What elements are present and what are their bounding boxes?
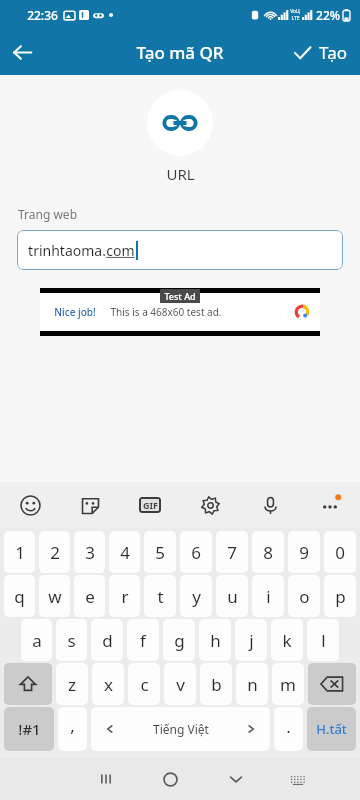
staticText: Nice job! [54,305,96,319]
staticText: o [299,585,310,608]
staticText: LTE [291,15,300,22]
staticText: Tạo mã QR [136,41,224,64]
button[interactable]: a [21,619,52,661]
button[interactable]: Tạo [293,30,347,75]
staticText: y [192,585,201,608]
button[interactable]: Keyboard layout [268,758,327,800]
button[interactable]: trinhtaoma. [17,230,343,270]
button[interactable]: p [324,575,356,617]
button[interactable]: 0 [324,531,356,573]
staticText: 8 [263,541,273,564]
button[interactable]: 7 [216,531,248,573]
staticText: f [140,629,146,652]
button[interactable]: t [144,575,176,617]
button[interactable]: 2 [39,531,70,573]
button[interactable]: s [56,619,87,661]
button[interactable]: d [91,619,123,661]
staticText: 6 [191,541,201,564]
staticText: q [14,585,25,608]
button[interactable]: Nice job! [40,288,320,336]
button[interactable]: H.tất [307,707,356,751]
button[interactable]: z [56,663,88,705]
button[interactable]: Voice input [240,482,300,528]
button[interactable]: g [163,619,195,661]
staticText: 3 [85,541,95,564]
staticText: 1 [15,541,25,564]
button[interactable]: 6 [180,531,212,573]
staticText: v [176,673,185,696]
button[interactable]: 4 [109,531,140,573]
button[interactable]: f [127,619,159,661]
button[interactable]: v [164,663,196,705]
staticText: H.tất [316,720,347,738]
button[interactable]: Home [138,758,203,800]
staticText: i [266,585,271,608]
button[interactable]: URL type [147,90,213,156]
button[interactable]: Back [0,30,45,75]
button[interactable]: 5 [144,531,176,573]
staticText: s [67,629,76,652]
staticText: n [247,673,258,696]
button[interactable]: 1 [4,531,35,573]
button[interactable]: GIF [120,482,180,528]
staticText: e [85,585,95,608]
button[interactable]: m [272,663,304,705]
staticText: Tiếng Việt [153,721,209,737]
staticText: g [174,629,185,652]
button[interactable]: 3 [74,531,105,573]
button[interactable]: Backspace [308,663,356,705]
staticText: Tạo [319,41,347,64]
staticText: 22:36 [27,7,58,23]
button[interactable]: x [92,663,124,705]
button[interactable]: Shift [4,663,52,705]
button[interactable]: w [39,575,70,617]
staticText: b [211,673,222,696]
staticText: t [157,585,164,608]
button[interactable]: . [274,707,303,751]
staticText: a [32,629,42,652]
staticText: z [68,673,76,696]
button[interactable]: b [200,663,232,705]
staticText: m [280,673,296,696]
staticText: VoЦ [290,8,300,15]
staticText: 7 [227,541,237,564]
staticText: 22% [316,7,340,23]
button[interactable]: i [252,575,284,617]
button[interactable]: h [199,619,231,661]
staticText: URL [166,164,195,184]
button[interactable]: More options [300,482,360,528]
button[interactable]: k [271,619,303,661]
button[interactable]: Emoji [0,482,60,528]
staticText: 5 [155,541,165,564]
button[interactable]: e [74,575,105,617]
button[interactable]: Space, Tiếng Việt [91,707,270,751]
button[interactable]: Hide keyboard [203,758,268,800]
button[interactable]: r [109,575,140,617]
staticText: Trang web [18,206,78,222]
staticText: d [102,629,113,652]
button[interactable]: q [4,575,35,617]
button[interactable]: 9 [288,531,320,573]
button[interactable]: l [307,619,339,661]
button[interactable]: u [216,575,248,617]
button[interactable]: 8 [252,531,284,573]
staticText: u [227,585,238,608]
button[interactable]: o [288,575,320,617]
staticText: 0 [335,541,345,564]
button[interactable]: Settings [180,482,240,528]
staticText: x [104,673,113,696]
staticText: 4 [120,541,130,564]
button[interactable]: y [180,575,212,617]
button[interactable]: j [235,619,267,661]
staticText: k [282,629,292,652]
button[interactable]: !#1 [4,707,54,751]
staticText: 9 [299,541,309,564]
button[interactable]: Recent apps [73,758,138,800]
button[interactable]: n [236,663,268,705]
button[interactable]: c [128,663,160,705]
staticText: trinhtaoma. [28,241,106,260]
button[interactable]: Stickers [60,482,120,528]
button[interactable]: , [58,707,87,751]
staticText: j [249,629,254,652]
staticText: !#1 [18,719,41,739]
